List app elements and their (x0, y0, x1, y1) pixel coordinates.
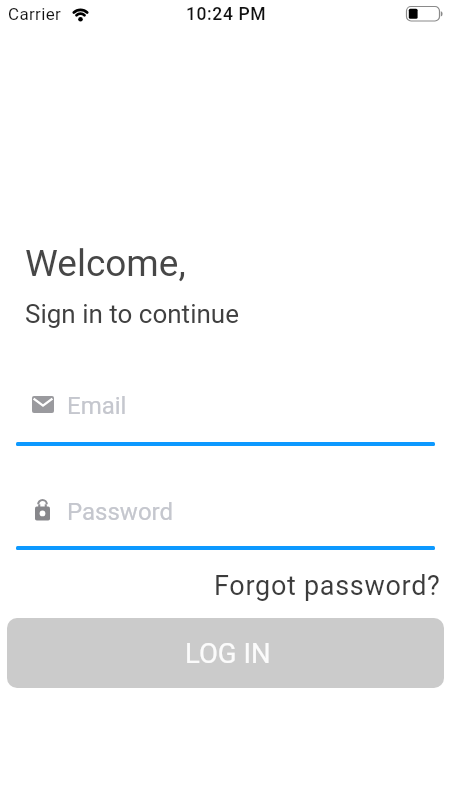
staticText: Welcome, (25, 242, 186, 285)
button[interactable] (16, 494, 435, 552)
staticText: Email (67, 392, 127, 420)
button[interactable]: Forgot password? (208, 564, 435, 596)
staticText: Sign in to continue (25, 299, 239, 329)
staticText: Carrier (8, 4, 62, 24)
staticText: Password (67, 498, 174, 526)
staticText: Forgot password? (214, 570, 441, 602)
button[interactable]: LOG IN (7, 618, 444, 688)
button[interactable] (16, 388, 435, 446)
staticText: LOG IN (185, 637, 271, 669)
staticText: 10:24 PM (186, 4, 267, 25)
